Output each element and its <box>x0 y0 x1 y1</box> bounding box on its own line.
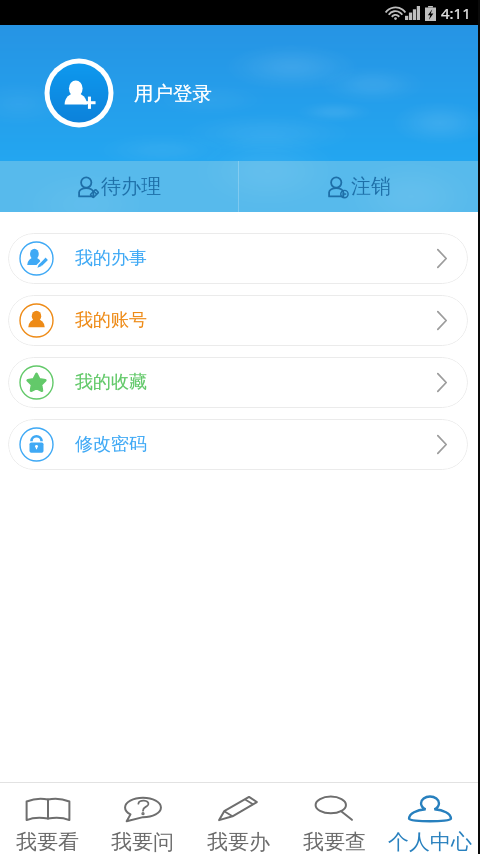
button[interactable]: 我要办 <box>190 783 286 854</box>
button[interactable]: 注销 <box>239 161 478 212</box>
staticText: 注销 <box>351 174 391 199</box>
button[interactable]: 我要问 <box>95 783 190 854</box>
staticText: 我要查 <box>303 829 366 854</box>
staticText: 个人中心 <box>388 829 472 854</box>
button[interactable]: 我的收藏 <box>8 357 468 408</box>
staticText: 我要问 <box>111 829 174 854</box>
staticText: 我的账号 <box>75 309 147 332</box>
button[interactable]: 我要查 <box>286 783 382 854</box>
button[interactable]: 我要看 <box>0 783 95 854</box>
staticText: 我要办 <box>207 829 270 854</box>
staticText: 用户登录 <box>134 81 212 106</box>
button[interactable]: 修改密码 <box>8 419 468 470</box>
staticText: 修改密码 <box>75 433 147 456</box>
staticText: 我的收藏 <box>75 371 147 394</box>
button[interactable]: 个人中心 <box>382 783 478 854</box>
staticText: 4:11 <box>441 3 471 23</box>
button[interactable]: 我的账号 <box>8 295 468 346</box>
button[interactable]: 待办理 <box>0 161 238 212</box>
staticText: 我的办事 <box>75 247 147 270</box>
staticText: 我要看 <box>16 829 79 854</box>
staticText: 待办理 <box>101 174 161 199</box>
button[interactable]: 我的办事 <box>8 233 468 284</box>
button[interactable]: User login <box>43 57 115 129</box>
